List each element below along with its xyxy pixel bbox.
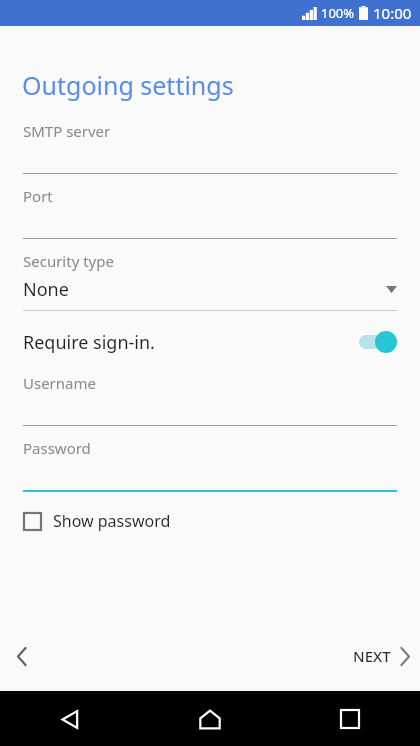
staticText: Port	[23, 186, 53, 206]
staticText: SMTP server	[23, 121, 111, 141]
staticText: Security type	[23, 251, 114, 271]
staticText: Show password	[53, 510, 171, 532]
staticText: 100%	[321, 4, 355, 22]
button[interactable]: NEXT	[341, 642, 420, 670]
button[interactable]: Home	[189, 698, 231, 740]
button[interactable]: SMTP server	[23, 121, 397, 174]
button[interactable]: Require sign-in.	[0, 325, 420, 359]
button[interactable]: Security type	[23, 251, 397, 311]
button[interactable]: Previous	[6, 640, 38, 672]
button[interactable]: Port	[23, 186, 397, 239]
button[interactable]: Password	[23, 438, 397, 492]
staticText: NEXT	[353, 646, 391, 666]
button[interactable]: Username	[23, 373, 397, 426]
button[interactable]: Show password	[0, 504, 420, 538]
staticText: Outgoing settings	[22, 68, 234, 102]
staticText: Password	[23, 438, 91, 458]
button[interactable]: Recent apps	[329, 698, 371, 740]
staticText: 10:00	[373, 3, 412, 23]
button[interactable]: Back	[49, 698, 91, 740]
staticText: Username	[23, 373, 96, 393]
staticText: Require sign-in.	[23, 330, 155, 355]
staticText: None	[23, 277, 69, 302]
